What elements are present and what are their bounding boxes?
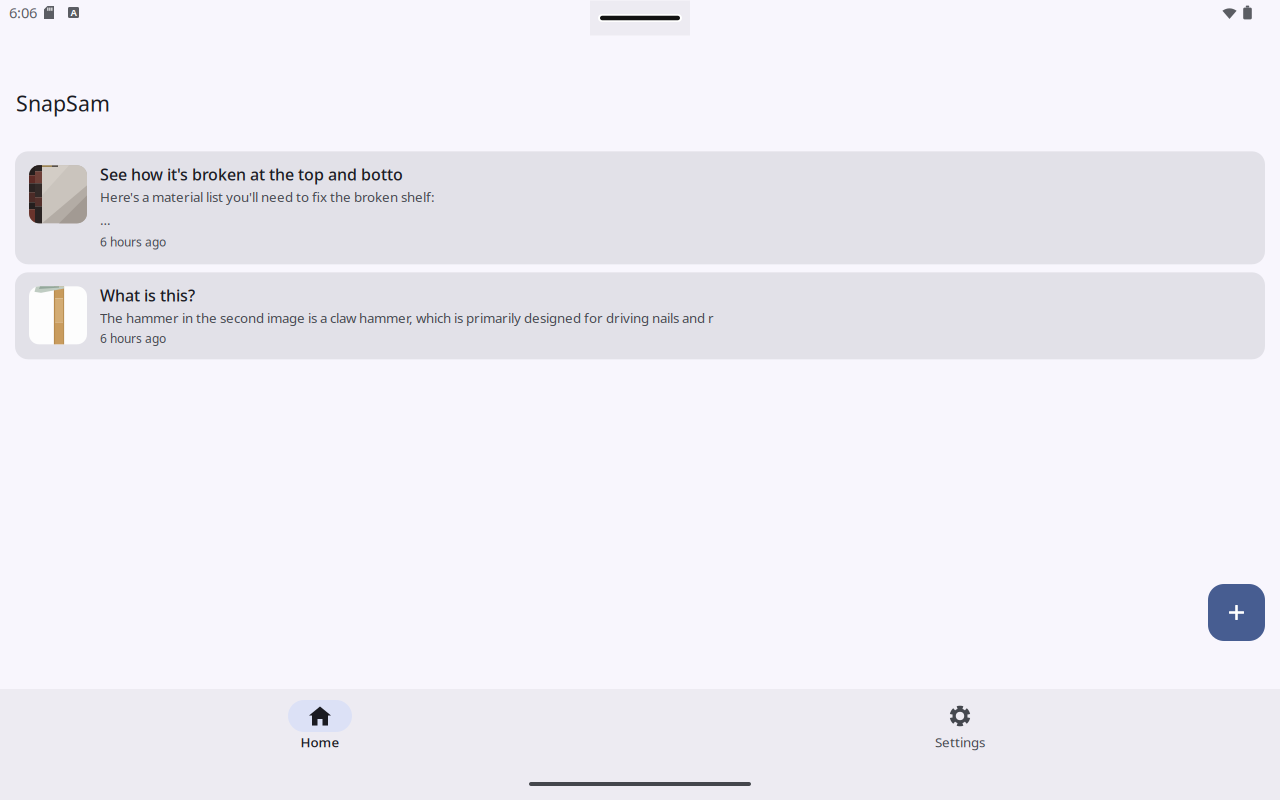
button[interactable]: What is this? — [15, 272, 1265, 359]
staticText: Here's a material list you'll need to fi… — [100, 188, 435, 206]
button[interactable]: New conversation — [1208, 584, 1265, 641]
button[interactable]: See how it's broken at the top and botto — [15, 151, 1265, 264]
staticText: The hammer in the second image is a claw… — [100, 309, 714, 327]
staticText: What is this? — [100, 285, 195, 306]
staticText: 6 hours ago — [100, 234, 166, 250]
staticText: Settings — [935, 733, 985, 751]
staticText: SnapSam — [16, 89, 110, 117]
staticText: Home — [300, 733, 339, 751]
staticText: See how it's broken at the top and botto — [100, 164, 403, 185]
button[interactable]: Settings — [640, 700, 1280, 749]
staticText: … — [100, 211, 111, 229]
staticText: A — [70, 6, 76, 19]
button[interactable]: Home — [0, 700, 640, 749]
staticText: 6 hours ago — [100, 330, 166, 346]
staticText: 6:06 — [9, 3, 37, 22]
